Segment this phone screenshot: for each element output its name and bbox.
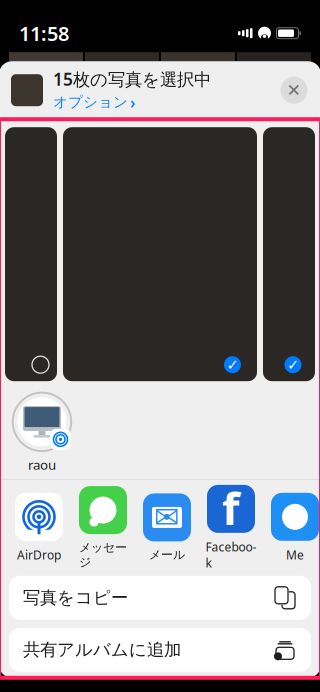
staticText: ✕ — [286, 80, 301, 100]
button[interactable]: 写真をコピー — [9, 576, 311, 620]
staticText: Facebook — [205, 539, 256, 571]
staticText: メッセージ — [79, 540, 127, 570]
staticText: › — [130, 92, 136, 113]
staticText: f — [222, 478, 240, 538]
button[interactable]: オプション — [53, 92, 136, 113]
staticText: Me — [286, 547, 304, 563]
button[interactable]: AirDrop raou — [5, 391, 79, 473]
button[interactable]: AirDrop — [13, 493, 65, 563]
button[interactable]: メッセージ — [77, 486, 129, 570]
staticText: 共有アルバムに追加 — [23, 639, 181, 660]
button[interactable]: f — [205, 485, 257, 571]
staticText: 写真をコピー — [23, 587, 128, 608]
staticText: 15枚の写真を選択中 — [53, 68, 211, 91]
staticText: AirDrop — [17, 547, 61, 563]
button[interactable]: 写真 — [263, 127, 315, 381]
staticText: raou — [28, 456, 56, 473]
staticText: ✓ — [287, 356, 299, 373]
staticText: ✓ — [226, 356, 238, 373]
button[interactable]: 写真 — [5, 127, 57, 381]
button[interactable]: 写真 — [63, 127, 257, 381]
staticText: ✉ — [154, 500, 180, 535]
button[interactable]: Me — [269, 493, 320, 563]
button[interactable]: ✉ — [141, 493, 193, 562]
staticText: メール — [149, 547, 185, 562]
button[interactable]: 共有アルバムに追加 — [9, 628, 311, 672]
staticText: オプション — [53, 93, 128, 111]
button[interactable]: 閉じる — [279, 75, 309, 105]
staticText: 11:58 — [19, 20, 69, 46]
